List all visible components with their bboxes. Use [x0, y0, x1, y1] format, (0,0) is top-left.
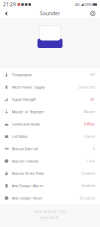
button[interactable]: Back	[2, 9, 11, 18]
button[interactable]: Anti-Tamper Alarm	[0, 180, 100, 192]
button[interactable]: Master or Repeater	[0, 106, 100, 118]
staticText: 5	[93, 146, 95, 151]
staticText: 24°	[90, 72, 95, 77]
button[interactable]: Settings	[89, 9, 97, 18]
button[interactable]: Connection Route	[0, 118, 100, 130]
staticText: Device version 4.1.250	[33, 210, 66, 214]
staticText: 1 min	[86, 159, 95, 163]
staticText: 21:29	[3, 1, 16, 8]
staticText: Serial 00-41	[40, 216, 59, 220]
staticText: 4G	[75, 2, 80, 7]
staticText: Master or Repeater	[12, 109, 45, 114]
staticText: Sounder	[40, 10, 60, 17]
staticText: -61	[90, 97, 95, 102]
button[interactable]: Mesh Power Supply	[0, 81, 100, 93]
staticText: Beacon Strike Plate	[12, 171, 44, 176]
button[interactable]: Beacon Interval	[0, 143, 100, 155]
button[interactable]: Signal Strength	[0, 93, 100, 106]
button[interactable]: Beacon Timeout	[0, 155, 100, 167]
staticText: Offline	[84, 122, 95, 126]
staticText: Beacon Timeout	[12, 158, 38, 164]
button[interactable]: Temperature	[0, 69, 100, 81]
staticText: Closed	[84, 134, 95, 139]
staticText: Temperature	[12, 72, 32, 77]
staticText: Master	[84, 109, 95, 114]
staticText: Mesh Power Supply	[12, 85, 45, 90]
staticText: Lid Status	[12, 134, 28, 139]
staticText: 65%	[85, 2, 92, 7]
staticText: Connected	[78, 85, 95, 89]
staticText: Anti-Tamper Alarm	[12, 183, 43, 188]
staticText: Anti-Tamper Reset	[12, 195, 42, 201]
button[interactable]: Anti-Tamper Reset	[0, 192, 100, 204]
button[interactable]: Beacon Strike Plate	[0, 167, 100, 179]
staticText: Disabled	[80, 196, 95, 200]
staticText: Beacon Interval	[12, 146, 38, 151]
staticText: Signal Strength	[12, 97, 36, 102]
button[interactable]: Lid Status	[0, 130, 100, 143]
staticText: Enabled	[82, 171, 95, 176]
staticText: Connection Route	[12, 121, 40, 127]
staticText: Enabled	[82, 183, 95, 188]
